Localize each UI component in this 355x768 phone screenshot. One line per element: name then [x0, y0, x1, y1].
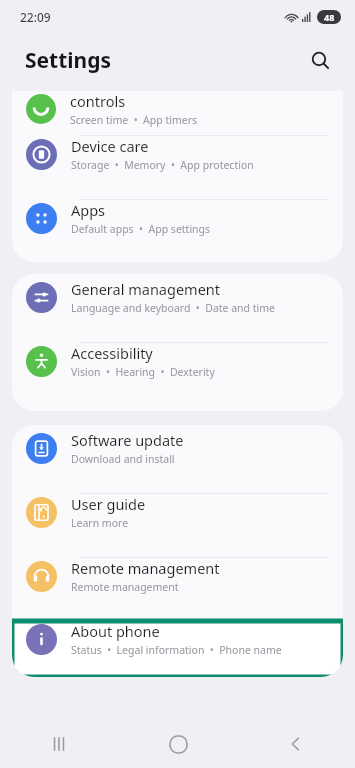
button[interactable]: General management [12, 279, 343, 342]
staticText: Settings [25, 46, 112, 75]
button[interactable]: Recent apps [31, 720, 87, 768]
button[interactable]: Software update [12, 430, 343, 493]
staticText: controls [70, 91, 126, 111]
button[interactable]: Back [268, 720, 324, 768]
staticText: 48 [324, 11, 335, 23]
button[interactable]: Remote management [12, 558, 343, 621]
staticText: About phone [71, 621, 160, 641]
staticText: Apps [71, 200, 106, 220]
button[interactable]: Home [150, 720, 206, 768]
staticText: Status • Legal information • Phone name [71, 643, 282, 657]
button[interactable]: Search [303, 43, 337, 77]
staticText: Device care [71, 136, 149, 156]
staticText: Vision • Hearing • Dexterity [71, 365, 215, 379]
staticText: Screen time • App timers [70, 113, 198, 127]
button[interactable]: Device care [12, 136, 343, 199]
staticText: Remote management [71, 580, 179, 594]
button[interactable]: About phone [12, 621, 343, 677]
staticText: Software update [71, 430, 184, 450]
staticText: Download and install [71, 452, 175, 466]
button[interactable]: controls [12, 91, 343, 135]
staticText: Default apps • App settings [71, 222, 211, 236]
staticText: User guide [71, 494, 146, 514]
staticText: General management [71, 279, 221, 299]
button[interactable]: User guide [12, 494, 343, 557]
staticText: Learn more [71, 516, 129, 530]
button[interactable]: Accessibility [12, 343, 343, 406]
staticText: Storage • Memory • App protection [71, 158, 254, 172]
staticText: Remote management [71, 558, 220, 578]
staticText: Accessibility [71, 343, 153, 363]
staticText: Language and keyboard • Date and time [71, 301, 276, 315]
button[interactable]: Apps [12, 200, 343, 262]
staticText: 22:09 [20, 9, 51, 25]
